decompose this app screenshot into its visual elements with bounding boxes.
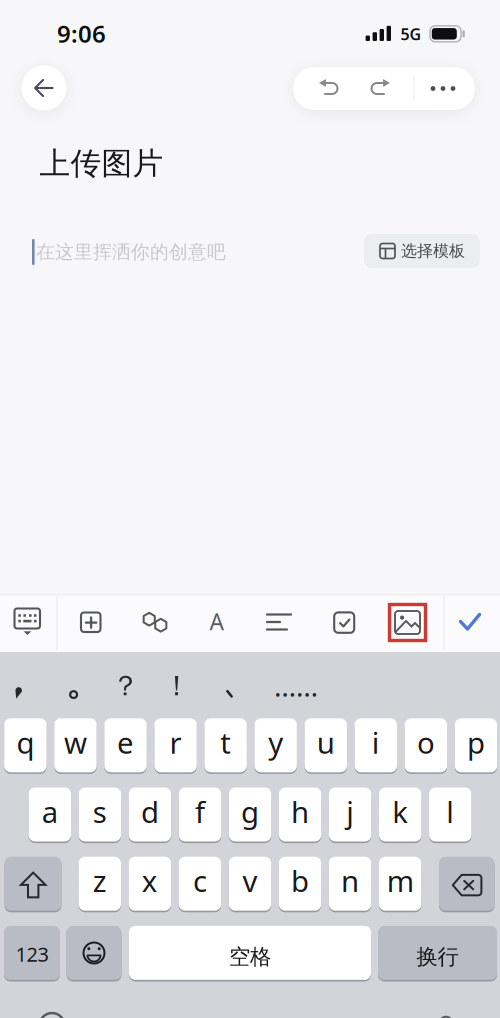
- staticText: t: [220, 723, 231, 762]
- button[interactable]: t: [204, 718, 247, 772]
- button[interactable]: 123: [4, 926, 60, 980]
- staticText: s: [93, 792, 107, 831]
- staticText: 在这里挥洒你的创意吧: [36, 240, 226, 263]
- button[interactable]: d: [129, 787, 171, 841]
- button[interactable]: [4, 857, 61, 911]
- button[interactable]: ？: [101, 658, 149, 714]
- button[interactable]: [389, 604, 425, 640]
- staticText: c: [193, 861, 207, 900]
- button[interactable]: r: [154, 718, 197, 772]
- button[interactable]: y: [254, 718, 297, 772]
- staticText: ？: [111, 669, 139, 703]
- staticText: g: [241, 792, 259, 831]
- button[interactable]: ！: [153, 658, 201, 714]
- staticText: x: [142, 861, 158, 900]
- button[interactable]: v: [229, 857, 271, 911]
- button[interactable]: [326, 604, 362, 640]
- button[interactable]: i: [355, 718, 397, 772]
- button[interactable]: f: [179, 787, 221, 841]
- staticText: 换行: [416, 944, 458, 970]
- staticText: 9:06: [57, 18, 106, 49]
- button[interactable]: s: [79, 787, 121, 841]
- staticText: b: [291, 861, 309, 900]
- button[interactable]: A: [198, 601, 234, 641]
- button[interactable]: u: [305, 718, 347, 772]
- button[interactable]: 选择模板: [364, 234, 480, 268]
- staticText: j: [346, 792, 354, 831]
- staticText: u: [317, 723, 335, 762]
- staticText: 5G: [400, 23, 421, 45]
- button[interactable]: [136, 603, 174, 641]
- staticText: ！: [163, 669, 191, 703]
- staticText: l: [446, 792, 454, 831]
- staticText: n: [341, 861, 359, 900]
- button[interactable]: [21, 65, 66, 110]
- button[interactable]: n: [329, 857, 371, 911]
- staticText: r: [170, 723, 182, 762]
- button[interactable]: 换行: [378, 926, 497, 980]
- button[interactable]: [66, 926, 121, 980]
- staticText: A: [209, 606, 223, 636]
- staticText: 空格: [229, 944, 271, 970]
- button[interactable]: z: [79, 857, 121, 911]
- button[interactable]: 空格: [129, 926, 371, 980]
- staticText: y: [268, 723, 283, 762]
- staticText: o: [417, 723, 435, 762]
- staticText: e: [117, 723, 134, 762]
- staticText: 上传图片: [39, 145, 163, 182]
- button[interactable]: [304, 68, 344, 108]
- button[interactable]: h: [279, 787, 321, 841]
- button[interactable]: j: [329, 787, 371, 841]
- button[interactable]: [9, 600, 45, 644]
- button[interactable]: w: [54, 718, 97, 772]
- button[interactable]: [0, 658, 47, 714]
- staticText: i: [372, 723, 380, 762]
- staticText: z: [93, 861, 107, 900]
- button[interactable]: [439, 857, 494, 911]
- button[interactable]: [453, 604, 487, 640]
- staticText: 选择模板: [401, 241, 465, 261]
- staticText: w: [64, 723, 87, 762]
- button[interactable]: q: [4, 718, 47, 772]
- button[interactable]: ……: [272, 658, 320, 714]
- button[interactable]: e: [104, 718, 147, 772]
- staticText: m: [387, 861, 414, 900]
- button[interactable]: [50, 658, 98, 714]
- staticText: ……: [274, 667, 318, 705]
- staticText: a: [42, 792, 58, 831]
- button[interactable]: k: [379, 787, 421, 841]
- button[interactable]: [364, 68, 404, 108]
- button[interactable]: g: [229, 787, 271, 841]
- button[interactable]: o: [405, 718, 447, 772]
- button[interactable]: m: [379, 857, 421, 911]
- button[interactable]: b: [279, 857, 321, 911]
- staticText: d: [141, 792, 159, 831]
- staticText: p: [467, 723, 485, 762]
- button[interactable]: [423, 68, 463, 108]
- button[interactable]: [204, 658, 252, 714]
- button[interactable]: x: [129, 857, 171, 911]
- staticText: k: [392, 792, 408, 831]
- staticText: f: [195, 792, 205, 831]
- staticText: q: [16, 723, 34, 762]
- button[interactable]: a: [29, 787, 71, 841]
- button[interactable]: c: [179, 857, 221, 911]
- staticText: h: [291, 792, 309, 831]
- button[interactable]: [73, 604, 109, 640]
- staticText: 123: [15, 941, 48, 967]
- button[interactable]: p: [455, 718, 497, 772]
- staticText: v: [242, 861, 257, 900]
- button[interactable]: [261, 604, 297, 640]
- button[interactable]: l: [429, 787, 471, 841]
